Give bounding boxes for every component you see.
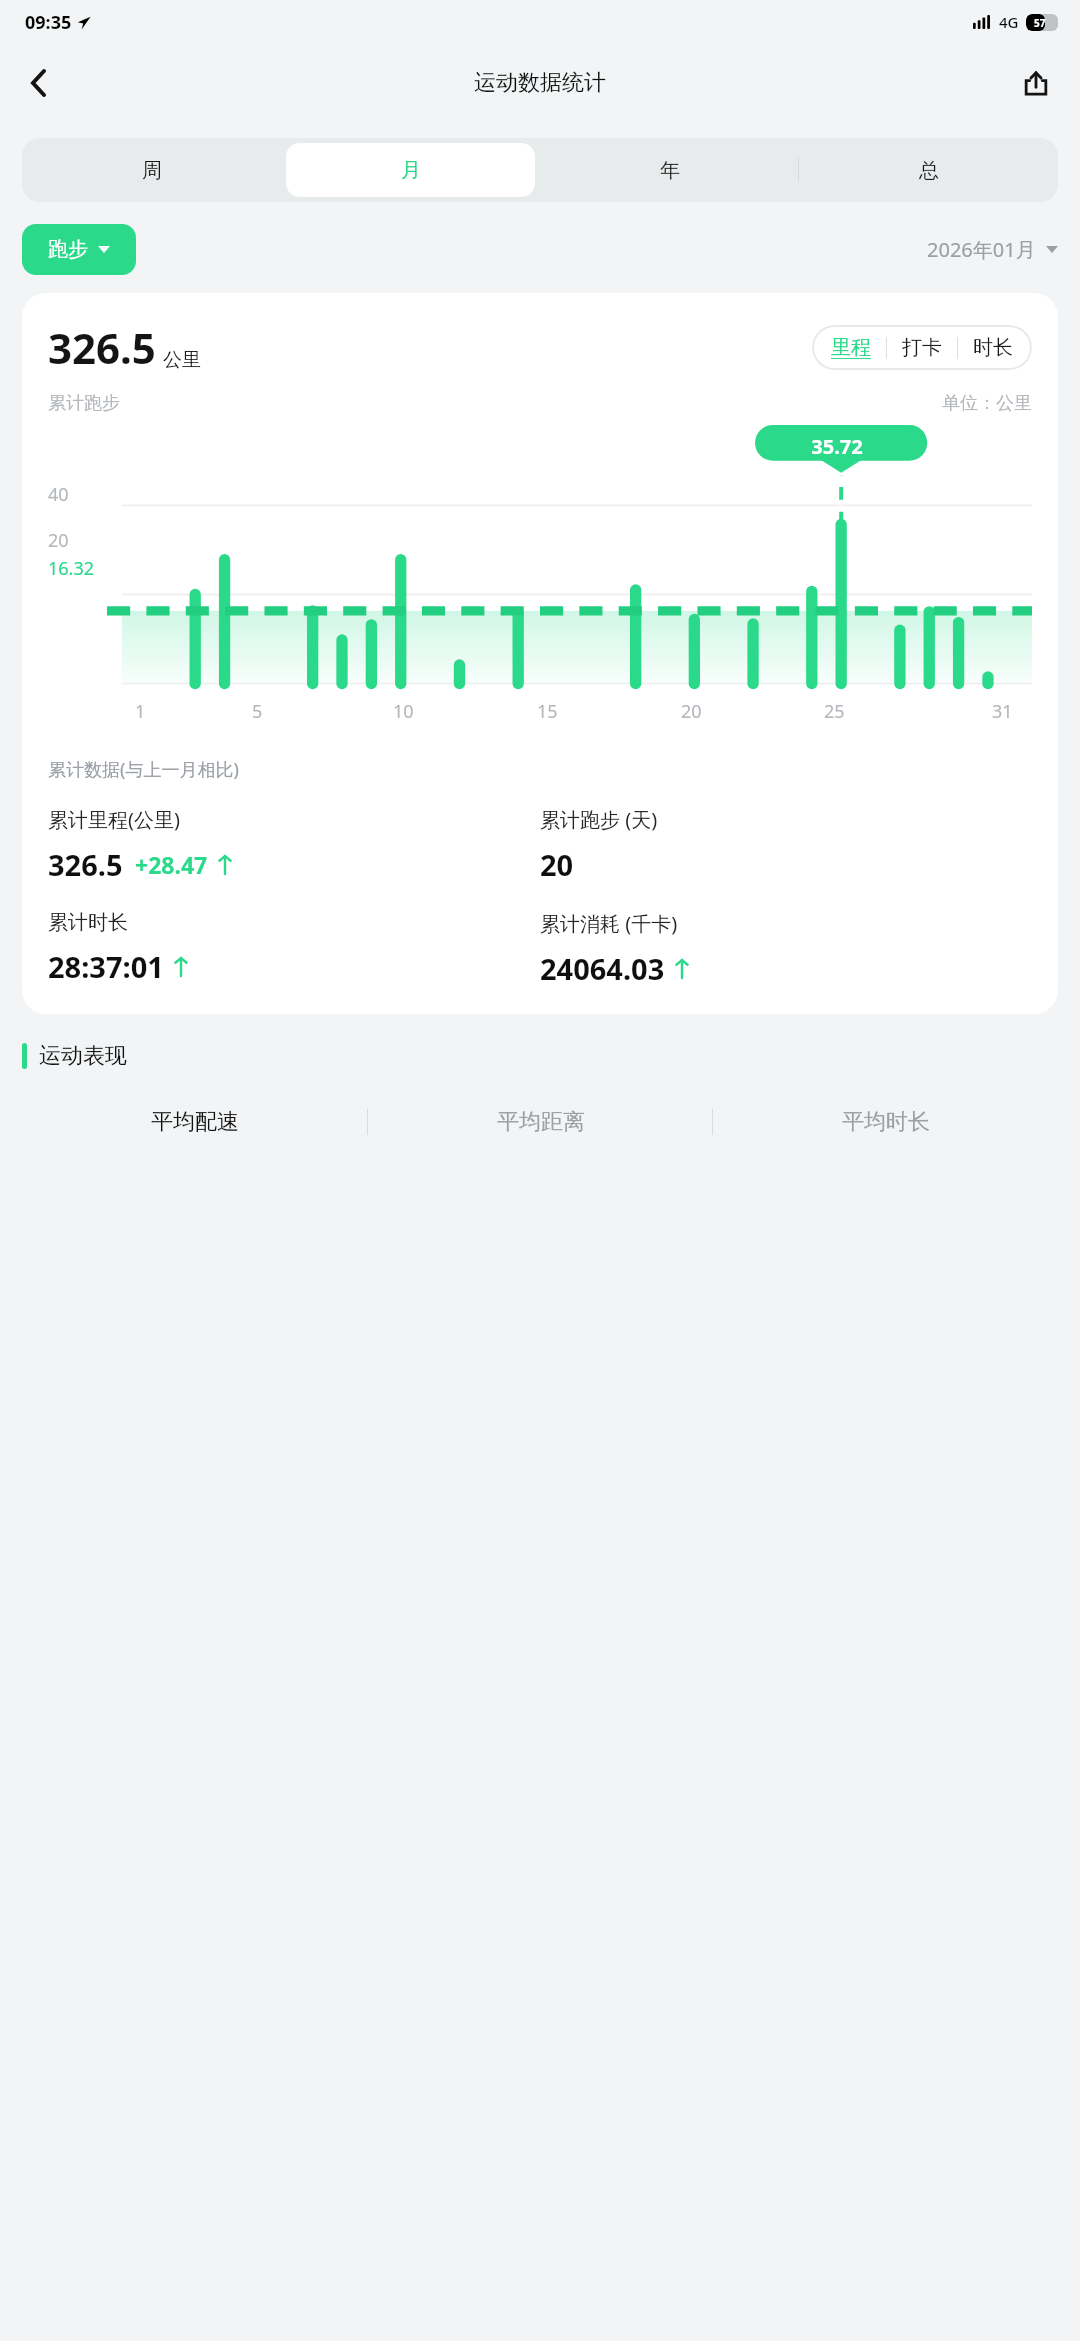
- button[interactable]: 周: [27, 143, 276, 197]
- button[interactable]: 总: [804, 143, 1053, 197]
- staticText: 35.72: [751, 433, 923, 460]
- staticText: 累计数据(与上一月相比): [48, 757, 239, 782]
- staticText: 打卡: [902, 335, 942, 360]
- button[interactable]: 跑步: [22, 224, 136, 275]
- staticText: 20: [540, 845, 574, 884]
- button[interactable]: 2026年01月: [927, 236, 1058, 263]
- staticText: 24064.03: [540, 949, 665, 988]
- staticText: 平均时长: [842, 1108, 930, 1136]
- staticText: 累计消耗 (千卡): [540, 910, 678, 937]
- staticText: 57: [1034, 16, 1046, 30]
- staticText: 时长: [973, 335, 1013, 360]
- staticText: 15: [537, 699, 558, 724]
- staticText: 跑步: [48, 237, 88, 262]
- staticText: 20: [48, 528, 69, 553]
- staticText: 28:37:01: [48, 947, 164, 986]
- staticText: 累计跑步 (天): [540, 806, 658, 833]
- staticText: 10: [393, 699, 414, 724]
- button[interactable]: 年: [545, 143, 794, 197]
- staticText: +28.47: [135, 849, 208, 880]
- staticText: 20: [681, 699, 702, 724]
- staticText: 5: [252, 699, 263, 724]
- staticText: 09:35: [25, 10, 72, 35]
- staticText: 16.32: [48, 556, 95, 581]
- staticText: 326.5: [48, 319, 156, 376]
- button[interactable]: 时长: [958, 335, 1028, 360]
- button[interactable]: Back: [8, 53, 68, 113]
- staticText: 运动数据统计: [474, 69, 606, 97]
- staticText: 累计跑步: [48, 392, 120, 415]
- button[interactable]: 平均时长: [713, 1092, 1058, 1152]
- staticText: 累计里程(公里): [48, 806, 180, 833]
- staticText: 周: [142, 158, 162, 183]
- staticText: 年: [660, 158, 680, 183]
- staticText: 40: [48, 482, 69, 507]
- staticText: 31: [992, 699, 1013, 724]
- button[interactable]: 里程: [816, 335, 886, 360]
- button[interactable]: Share: [1006, 53, 1066, 113]
- staticText: 运动表现: [39, 1042, 127, 1070]
- button[interactable]: 平均配速: [22, 1092, 368, 1152]
- staticText: 总: [919, 158, 939, 183]
- staticText: 326.5: [48, 845, 123, 884]
- staticText: 平均配速: [151, 1108, 239, 1136]
- staticText: 1: [135, 699, 146, 724]
- staticText: 25: [824, 699, 845, 724]
- staticText: 月: [401, 158, 421, 183]
- staticText: 累计时长: [48, 910, 128, 935]
- staticText: 4G: [999, 12, 1019, 32]
- staticText: 里程: [831, 335, 871, 360]
- staticText: 公里: [163, 348, 201, 372]
- staticText: 单位：公里: [942, 392, 1032, 415]
- button[interactable]: 月: [286, 143, 535, 197]
- staticText: 平均距离: [497, 1108, 585, 1136]
- button[interactable]: 打卡: [887, 335, 957, 360]
- button[interactable]: 平均距离: [368, 1092, 713, 1152]
- staticText: 2026年01月: [927, 236, 1036, 263]
